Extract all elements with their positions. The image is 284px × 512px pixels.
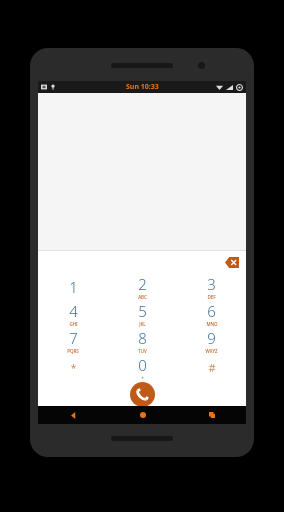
button[interactable]: * <box>38 354 108 381</box>
button[interactable]: Backspace <box>225 257 239 268</box>
button[interactable]: 9 <box>177 327 246 354</box>
button[interactable]: Back <box>38 406 108 424</box>
staticText: DEF <box>207 294 216 300</box>
staticText: MNO <box>206 321 218 327</box>
button[interactable]: # <box>177 354 246 381</box>
button[interactable]: Call <box>130 382 155 407</box>
staticText: # <box>208 360 216 375</box>
staticText: Sun 10:33 <box>126 82 159 92</box>
staticText: 3 <box>207 274 216 294</box>
staticText: 0 <box>138 355 147 375</box>
staticText: PQRS <box>67 348 79 354</box>
staticText: 4 <box>69 301 78 321</box>
button[interactable]: 4 <box>38 300 108 327</box>
button[interactable]: 5 <box>108 300 177 327</box>
staticText: 2 <box>138 274 147 294</box>
staticText: JKL <box>139 321 146 327</box>
staticText: 9 <box>207 328 216 348</box>
button[interactable]: 0 <box>108 354 177 381</box>
button[interactable]: 8 <box>108 327 177 354</box>
button[interactable]: 1 <box>38 273 108 300</box>
staticText: WXYZ <box>205 348 218 354</box>
staticText: ABC <box>138 294 147 300</box>
button[interactable]: 7 <box>38 327 108 354</box>
button[interactable]: 3 <box>177 273 246 300</box>
staticText: + <box>141 375 144 381</box>
button[interactable]: 2 <box>108 273 177 300</box>
staticText: 5 <box>138 301 147 321</box>
button[interactable]: 6 <box>177 300 246 327</box>
staticText: 6 <box>207 301 216 321</box>
staticText: 8 <box>138 328 147 348</box>
staticText: 1 <box>69 277 78 297</box>
button[interactable]: Home <box>108 406 177 424</box>
staticText: TUV <box>138 348 147 354</box>
staticText: GHI <box>69 321 78 327</box>
button[interactable]: Recents <box>177 406 246 424</box>
staticText: * <box>70 360 77 375</box>
staticText: 7 <box>69 328 78 348</box>
